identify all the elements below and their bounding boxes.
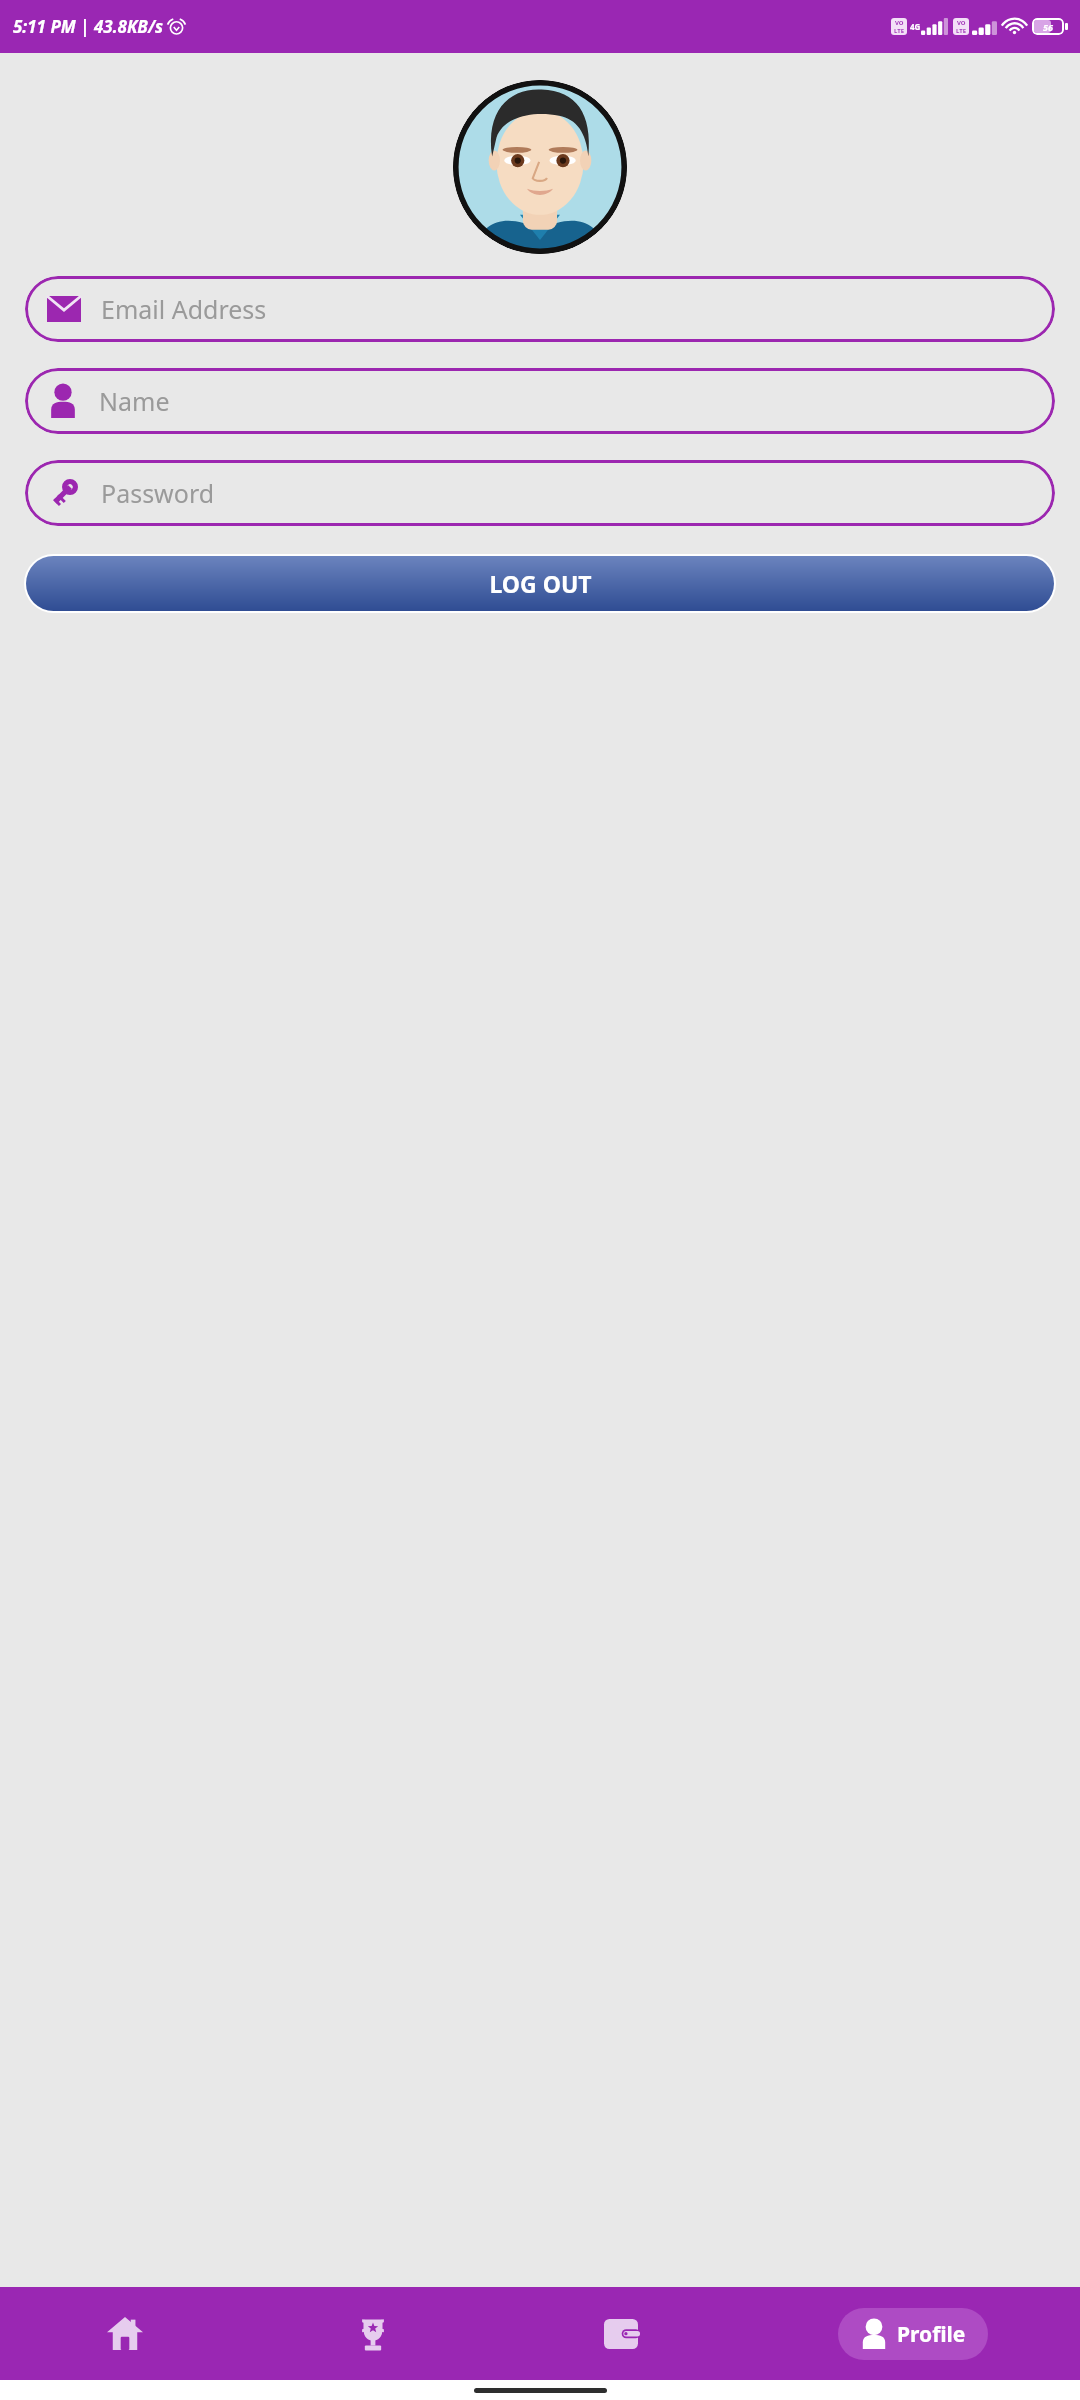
button[interactable]: Rewards (249, 2287, 497, 2380)
staticText: 56 (1043, 21, 1053, 33)
button[interactable]: Profile (838, 2308, 988, 2360)
staticText: Email Address (101, 292, 267, 326)
staticText: Name (99, 384, 170, 418)
staticText: Profile (897, 2320, 966, 2349)
button[interactable]: Wallet (497, 2287, 745, 2380)
staticText: VO (957, 19, 966, 27)
button[interactable]: Home (0, 2287, 249, 2380)
staticText: LTE (894, 27, 905, 35)
staticText: 4G (910, 21, 921, 32)
staticText: 5:11 PM | 43.8KB/s (13, 15, 164, 38)
button[interactable]: Password (25, 460, 1055, 526)
staticText: Password (101, 476, 215, 510)
staticText: LTE (956, 27, 967, 35)
button[interactable]: Email Address (25, 276, 1055, 342)
staticText: LOG OUT (489, 568, 592, 599)
button[interactable]: LOG OUT (26, 556, 1054, 611)
staticText: VO (895, 19, 904, 27)
button[interactable]: Name (25, 368, 1055, 434)
button[interactable]: Profile picture (453, 80, 627, 254)
